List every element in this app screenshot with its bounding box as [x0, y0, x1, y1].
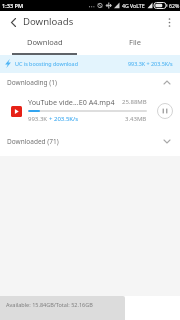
staticText: 62% [169, 2, 180, 9]
button[interactable]: File [90, 33, 180, 51]
button[interactable]: Pause [0, 92, 180, 130]
staticText: 25.88MB [122, 98, 147, 106]
staticText: Available: 15.84GB/Total: 52.16GB [6, 301, 93, 308]
staticText: YouTube vide...E0 A4.mp4 [28, 97, 122, 107]
staticText: Downloaded (71) [7, 137, 59, 146]
staticText: 1:33 PM [2, 2, 24, 10]
button[interactable]: Download [0, 33, 90, 51]
button[interactable]: Back [2, 11, 24, 33]
staticText: 993.3K + 203.5K/s [128, 60, 173, 67]
staticText: UC is boosting download [15, 60, 78, 67]
button[interactable]: Downloaded (71) [0, 130, 180, 156]
staticText: Downloads [23, 15, 74, 28]
button[interactable]: Downloading (1) [0, 73, 180, 92]
staticText: + 203.5K/s [49, 115, 79, 123]
staticText: 3.43MB [125, 115, 147, 123]
button[interactable]: More options [158, 11, 180, 33]
staticText: File [129, 37, 141, 47]
button[interactable]: Pause [156, 102, 174, 120]
staticText: Download [27, 37, 63, 47]
staticText: Downloading (1) [7, 78, 57, 87]
staticText: 993.3K [28, 115, 49, 123]
staticText: 4G VoLTE [122, 2, 145, 9]
